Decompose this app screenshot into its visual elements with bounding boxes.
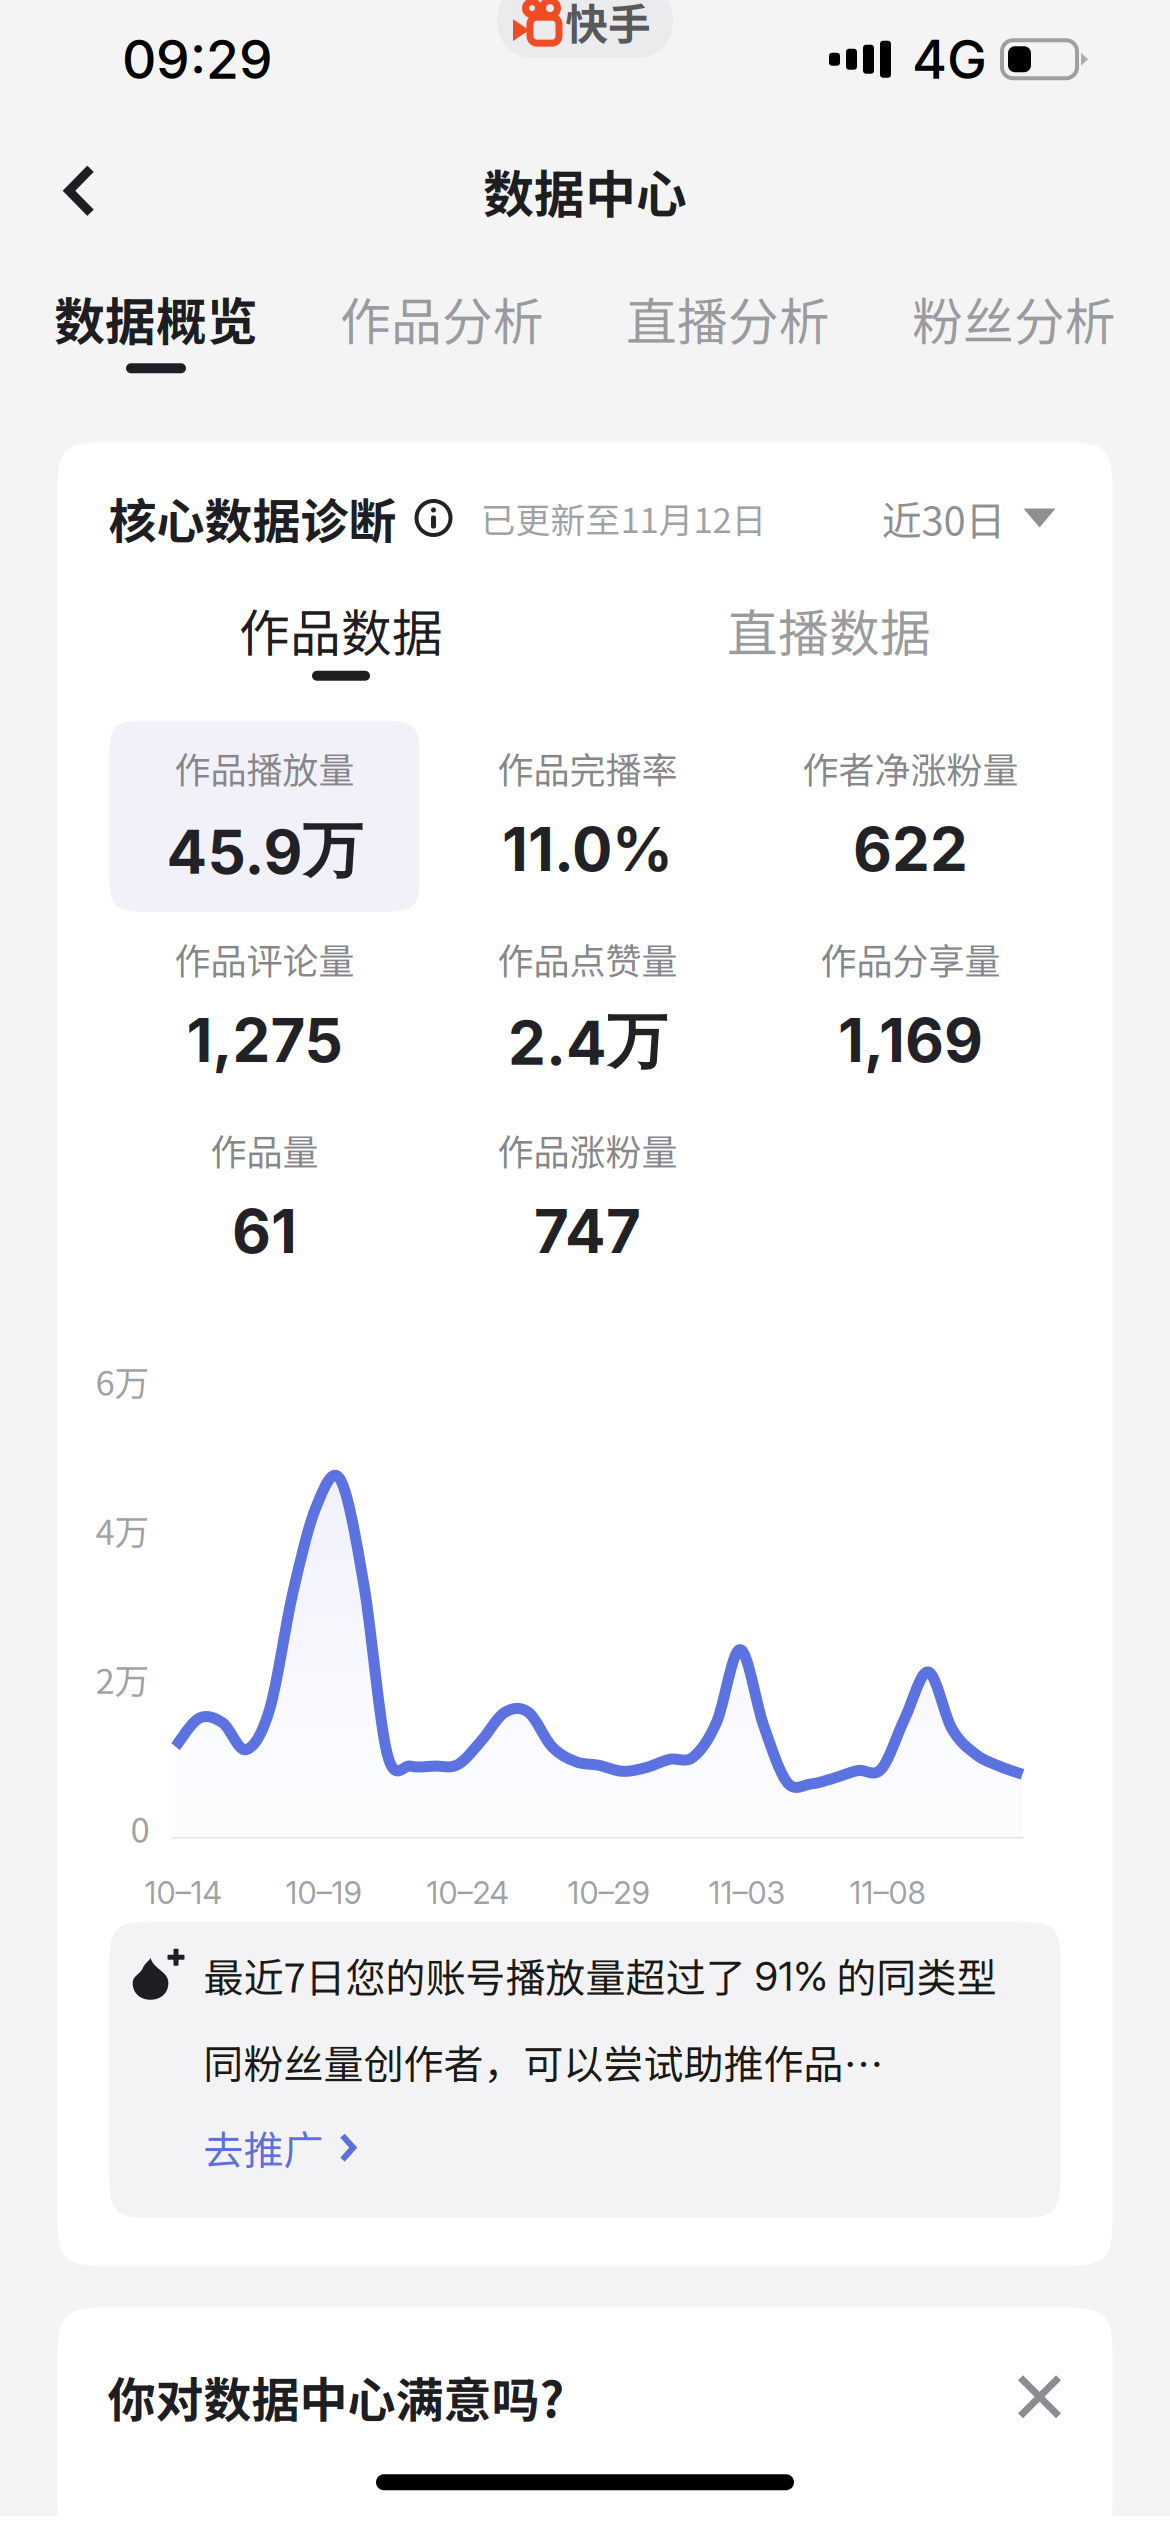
staticText: 10–29 xyxy=(567,1874,649,1911)
staticText: 最近7日您的账号播放量超过了 91% 的同类型同粉丝量创作者，可以尝试助推作品… xyxy=(203,1947,996,2090)
button[interactable]: 作品量 xyxy=(109,1103,432,1294)
staticText: 数据中心 xyxy=(483,154,687,227)
button[interactable]: 直播数据 xyxy=(585,602,1073,702)
staticText: 10–19 xyxy=(285,1874,361,1911)
staticText: 45.9万 xyxy=(166,813,362,888)
staticText: 作品播放量 xyxy=(174,742,354,794)
staticText: 4万 xyxy=(95,1505,149,1555)
staticText: 你对数据中心满意吗? xyxy=(107,2362,564,2431)
staticText: 近30日 xyxy=(881,489,1005,547)
button[interactable]: Back xyxy=(0,134,135,247)
staticText: 11–08 xyxy=(849,1874,925,1911)
staticText: 1,169 xyxy=(838,1004,983,1076)
staticText: 粉丝分析 xyxy=(912,282,1116,355)
staticText: 61 xyxy=(232,1195,297,1267)
staticText: 作者净涨粉量 xyxy=(802,742,1018,794)
staticText: 核心数据诊断 xyxy=(108,483,396,553)
staticText: 4G xyxy=(912,27,987,91)
staticText: 直播数据 xyxy=(727,593,931,666)
button[interactable]: 最近7日您的账号播放量超过了 91% 的同类型同粉丝量创作者，可以尝试助推作品… xyxy=(109,1922,1060,2218)
staticText: 0 xyxy=(130,1803,149,1853)
button[interactable]: 数据概览 xyxy=(13,247,299,388)
button[interactable]: 作品分享量 xyxy=(755,912,1078,1103)
button[interactable]: 近30日 xyxy=(881,489,1055,547)
button[interactable]: 粉丝分析 xyxy=(871,247,1157,388)
staticText: 1,275 xyxy=(186,1004,342,1076)
staticText: 2万 xyxy=(95,1654,149,1704)
staticText: 作品完播率 xyxy=(497,742,677,794)
staticText: 作品量 xyxy=(210,1124,318,1176)
staticText: 622 xyxy=(853,813,968,885)
button[interactable]: 作品数据 xyxy=(97,602,585,702)
button[interactable]: 直播分析 xyxy=(585,247,871,388)
staticText: 已更新至11月12日 xyxy=(480,493,766,543)
staticText: 11.0% xyxy=(502,813,673,885)
staticText: 去推广 xyxy=(203,2119,323,2177)
staticText: 作品分享量 xyxy=(820,933,1000,985)
staticText: 直播分析 xyxy=(626,282,830,355)
staticText: 11–03 xyxy=(708,1874,785,1911)
button[interactable]: 作品播放量 xyxy=(109,721,432,912)
staticText: 09:29 xyxy=(122,27,273,91)
staticText: 作品点赞量 xyxy=(497,933,677,985)
staticText: 10–14 xyxy=(144,1874,221,1911)
staticText: 10–24 xyxy=(426,1874,508,1911)
button[interactable]: 作品评论量 xyxy=(109,912,432,1103)
staticText: 6万 xyxy=(95,1356,149,1406)
button[interactable]: 作者净涨粉量 xyxy=(755,721,1078,912)
staticText: 747 xyxy=(534,1195,641,1267)
button[interactable]: 作品涨粉量 xyxy=(432,1103,755,1294)
staticText: 作品数据 xyxy=(239,593,443,666)
staticText: 作品分析 xyxy=(340,282,544,355)
staticText: 数据概览 xyxy=(54,282,258,355)
button[interactable]: 作品分析 xyxy=(299,247,585,388)
staticText: 快手 xyxy=(565,0,651,52)
button[interactable]: Close xyxy=(1000,2358,1078,2436)
button[interactable]: 作品完播率 xyxy=(432,721,755,912)
button[interactable]: 作品点赞量 xyxy=(432,912,755,1103)
staticText: 作品评论量 xyxy=(174,933,354,985)
staticText: 作品涨粉量 xyxy=(497,1124,677,1176)
staticText: 2.4万 xyxy=(508,1004,667,1079)
